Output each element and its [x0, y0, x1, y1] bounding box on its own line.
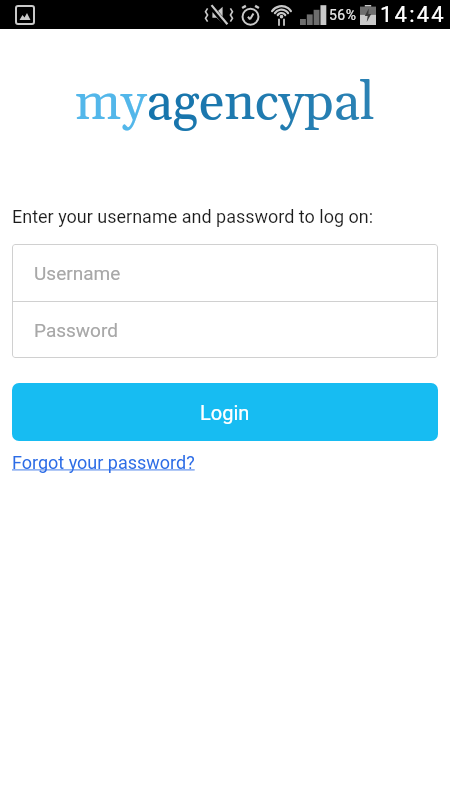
staticText: 56% — [329, 7, 357, 23]
button[interactable]: Password — [12, 302, 438, 358]
staticText: Login — [200, 401, 250, 424]
staticText: 14:44 — [380, 2, 446, 28]
button[interactable]: Login — [12, 383, 438, 441]
button[interactable]: Forgot your password? — [12, 452, 195, 473]
staticText: Enter your username and password to log … — [12, 206, 374, 227]
staticText: Password — [34, 319, 118, 341]
staticText: myagencypal — [75, 71, 375, 137]
button[interactable]: Username — [12, 244, 438, 301]
staticText: Username — [34, 262, 121, 284]
